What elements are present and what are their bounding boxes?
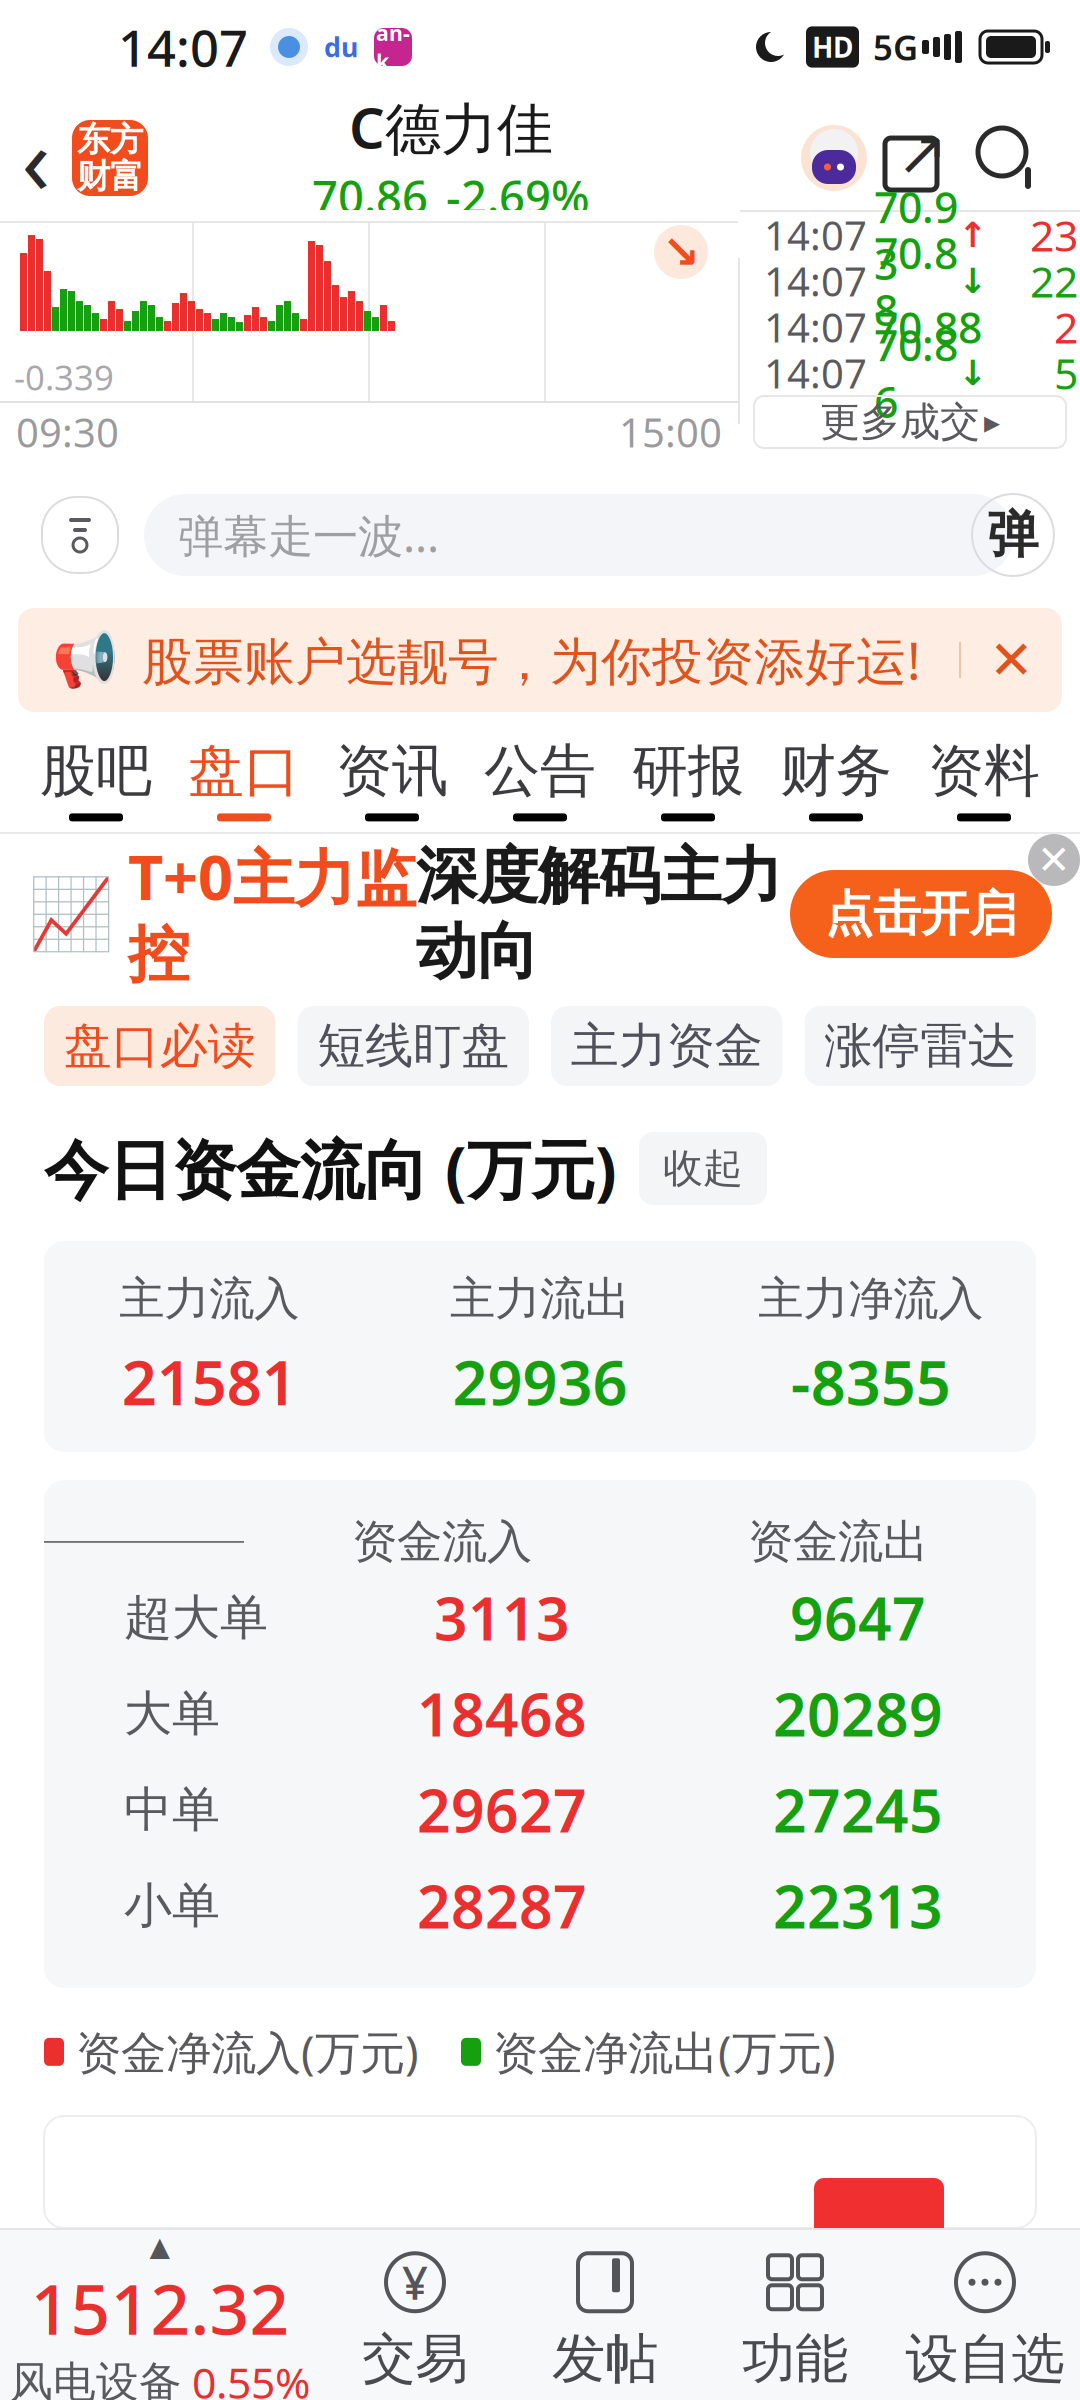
staticText: 盘口必读	[64, 1016, 256, 1075]
staticText: -8355	[791, 1341, 951, 1422]
staticText: 交易	[362, 2326, 468, 2392]
staticText: 9647	[790, 1579, 926, 1657]
staticText: ▸	[984, 404, 1000, 440]
staticText: ↘	[662, 226, 700, 278]
button[interactable]: 更多成交	[754, 396, 1066, 448]
staticText: 收起	[663, 1144, 743, 1193]
staticText: 研报	[632, 737, 744, 805]
button[interactable]: 搜索	[960, 110, 1056, 206]
staticText: 资料	[928, 737, 1040, 805]
staticText: 中单	[124, 1780, 220, 1839]
staticText: 09:30	[16, 405, 119, 458]
button[interactable]: 短线盯盘	[297, 1006, 529, 1086]
staticText: 70.88	[874, 224, 958, 338]
staticText: 28287	[417, 1867, 587, 1945]
staticText: 70.88	[874, 299, 982, 355]
staticText: HD	[812, 28, 853, 66]
button[interactable]: 资料	[910, 737, 1058, 821]
staticText: 东方	[77, 119, 143, 160]
staticText: 1512.32	[30, 2262, 289, 2354]
staticText: 财富	[77, 156, 143, 197]
staticText: ank	[376, 19, 410, 75]
staticText: 盘口	[188, 737, 300, 805]
staticText: 70.93	[874, 178, 958, 292]
button[interactable]: 风电设备指数	[0, 2231, 320, 2400]
staticText: 发帖	[552, 2326, 658, 2392]
button[interactable]: 盘口必读	[44, 1006, 275, 1086]
button[interactable]: 智能助手	[794, 110, 874, 206]
button[interactable]: 公告	[466, 737, 614, 821]
button[interactable]: 设自选	[890, 2250, 1080, 2392]
staticText: 14:07	[764, 346, 867, 399]
staticText: 股票账户选靓号，为你投资添好运!	[142, 626, 921, 694]
staticText: 20289	[773, 1675, 943, 1753]
staticText: 风电设备	[10, 2356, 182, 2400]
button[interactable]: 主力资金	[551, 1006, 782, 1086]
staticText: 更多成交	[820, 397, 980, 446]
staticText: 主力净流入	[758, 1271, 983, 1327]
button[interactable]: 📢	[18, 608, 1062, 712]
staticText: 设自选	[905, 2326, 1064, 2392]
staticText: C德力佳	[349, 90, 553, 164]
button[interactable]: 返回	[0, 110, 72, 206]
staticText: 公告	[484, 737, 596, 805]
staticText: 22313	[773, 1867, 943, 1945]
button[interactable]: 弹幕设置	[42, 497, 118, 573]
staticText: 22	[1030, 253, 1078, 309]
staticText: 资金流出	[748, 1514, 928, 1570]
staticText: 23	[1030, 207, 1078, 263]
staticText: 资讯	[336, 737, 448, 805]
staticText: 0.55%	[192, 2354, 310, 2400]
staticText: 📢	[52, 629, 118, 690]
staticText: 弹	[987, 504, 1038, 566]
staticText: du	[324, 29, 358, 65]
staticText: ↑	[958, 215, 987, 255]
button[interactable]: 发帖	[510, 2250, 700, 2392]
staticText: 功能	[742, 2326, 848, 2392]
button[interactable]: ¥	[320, 2250, 510, 2392]
staticText: 21581	[122, 1341, 297, 1422]
staticText: 资金净流出(万元)	[493, 2022, 836, 2082]
staticText: 29627	[417, 1771, 587, 1849]
staticText: 弹幕走一波...	[178, 505, 439, 565]
button[interactable]: 涨停雷达	[804, 1006, 1036, 1086]
staticText: 29936	[452, 1341, 627, 1422]
staticText: 涨停雷达	[824, 1016, 1016, 1075]
button[interactable]: 功能	[700, 2250, 890, 2392]
button[interactable]: 盘口	[170, 737, 318, 821]
staticText: T+0主力监控	[128, 835, 416, 993]
button[interactable]: 研报	[614, 737, 762, 821]
button[interactable]: 弹幕走一波...	[144, 494, 1014, 576]
staticText: ¥	[402, 2252, 428, 2312]
staticText: 14:07	[764, 300, 867, 353]
button[interactable]: 📈	[0, 848, 1080, 980]
staticText: ↗	[896, 118, 947, 188]
button[interactable]: 资讯	[318, 737, 466, 821]
staticText: 财务	[780, 737, 892, 805]
staticText: ↓	[958, 261, 987, 301]
staticText: -2.69%	[446, 166, 590, 226]
staticText: 深度解码主力动向	[416, 839, 782, 989]
staticText: 资金净流入(万元)	[76, 2022, 419, 2082]
staticText: 主力资金	[571, 1016, 763, 1075]
staticText: 短线盯盘	[317, 1016, 509, 1075]
button[interactable]: 发弹幕	[972, 494, 1054, 576]
button[interactable]: 收起	[639, 1132, 767, 1205]
staticText: 14:07	[764, 254, 867, 307]
button[interactable]: 东方财富	[72, 120, 148, 196]
staticText: ‹	[21, 96, 50, 220]
staticText: 主力流出	[450, 1271, 630, 1327]
staticText: 超大单	[124, 1588, 268, 1647]
staticText: 18468	[417, 1675, 587, 1753]
staticText: 点击开启	[825, 884, 1017, 943]
button[interactable]: 股吧	[22, 737, 170, 821]
button[interactable]: 分享	[874, 110, 960, 206]
staticText: 2	[1054, 299, 1078, 355]
button[interactable]: 关闭广告	[1028, 834, 1080, 886]
staticText: 70.86	[874, 316, 958, 430]
staticText: 5	[1054, 345, 1078, 401]
staticText: 资金流入	[352, 1514, 532, 1570]
button[interactable]: 财务	[762, 737, 910, 821]
staticText: ▲	[149, 2231, 170, 2262]
staticText: 70.86	[312, 166, 428, 226]
